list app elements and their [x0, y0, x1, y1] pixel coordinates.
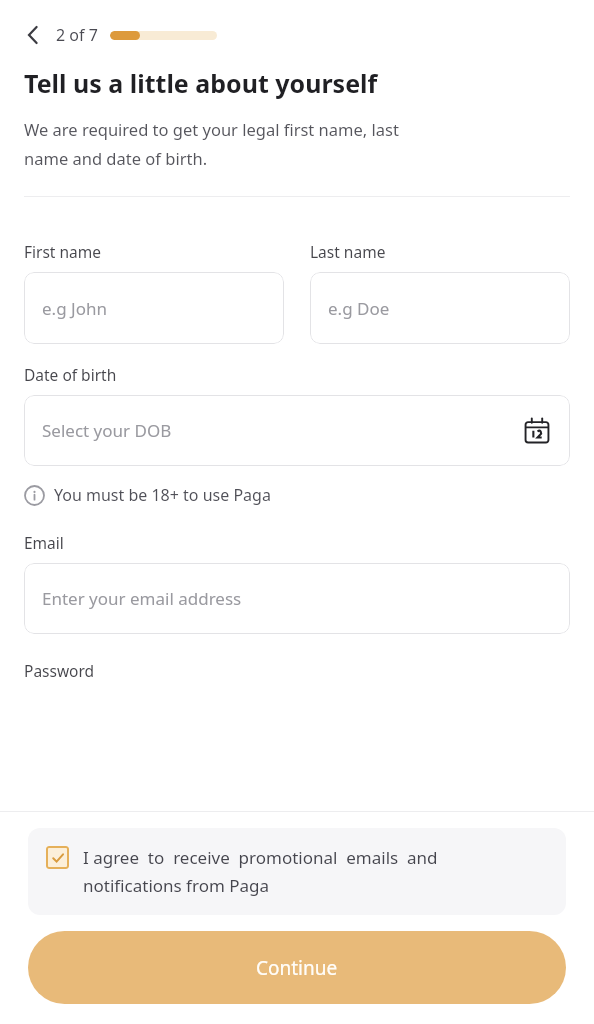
staticText: e.g Doe [328, 297, 390, 320]
staticText: Date of birth [24, 364, 117, 385]
staticText: Enter your email address [42, 587, 242, 610]
staticText: e.g John [42, 297, 107, 320]
staticText: Continue [256, 955, 338, 981]
button[interactable]: Continue [28, 931, 566, 1004]
staticText: 2 of 7 [56, 24, 98, 46]
staticText: Email [24, 532, 64, 553]
staticText: We are required to get your legal first … [24, 118, 399, 170]
button[interactable]: Open date picker [522, 416, 552, 446]
button[interactable]: Select your DOB [24, 395, 570, 466]
staticText: First name [24, 241, 102, 262]
staticText: You must be 18+ to use Paga [54, 484, 271, 506]
button[interactable]: Enter your email address [24, 563, 570, 634]
staticText: Tell us a little about yourself [24, 66, 378, 100]
staticText: Last name [310, 241, 386, 262]
button[interactable]: e.g John [24, 272, 284, 344]
button[interactable]: Agree to promotional emails [28, 828, 566, 915]
staticText: Password [24, 660, 95, 681]
button[interactable]: Agree to promotional emails [46, 846, 69, 869]
button[interactable]: e.g Doe [310, 272, 570, 344]
button[interactable]: Back [16, 18, 50, 52]
staticText: I agree to receive promotional emails an… [83, 846, 548, 897]
staticText: Select your DOB [42, 419, 522, 442]
